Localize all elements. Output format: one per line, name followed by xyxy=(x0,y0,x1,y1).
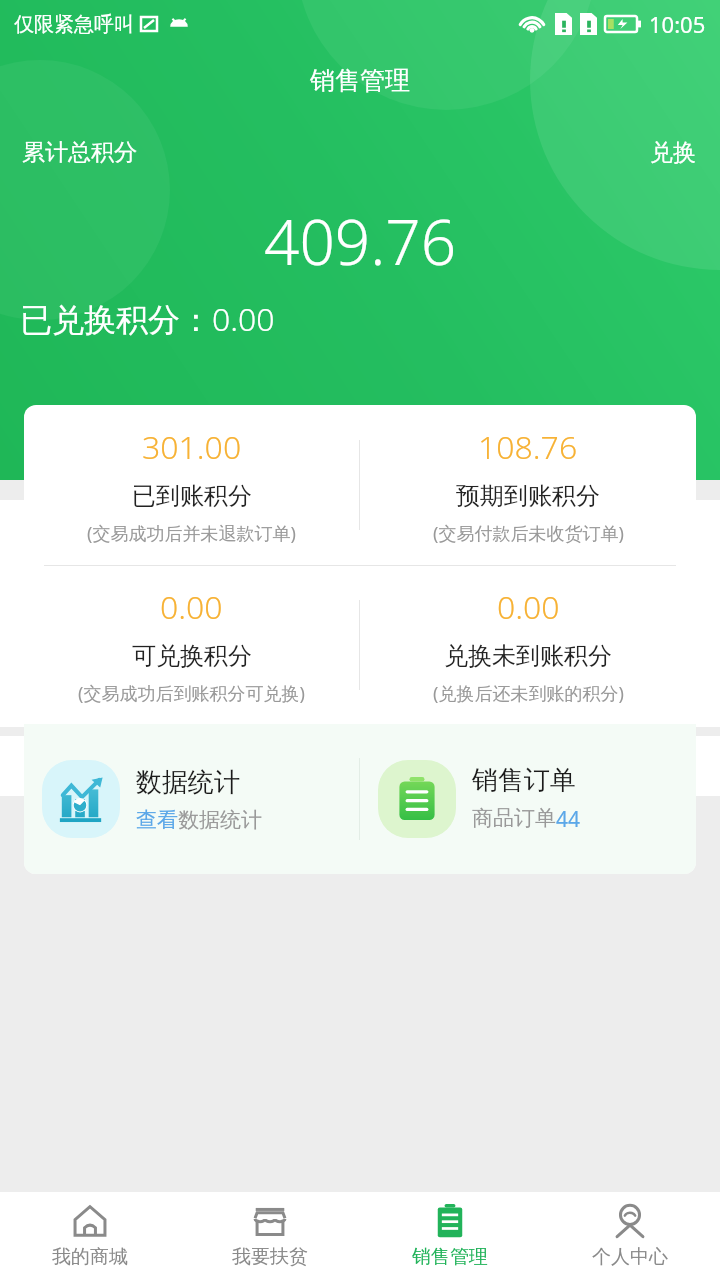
staticText: 409.76 xyxy=(264,199,457,283)
button[interactable]: 我的团队 xyxy=(0,736,720,796)
staticText: 大使商品积分 xyxy=(465,668,615,699)
button[interactable]: 销售管理 xyxy=(360,1192,540,1280)
button[interactable]: 301.00 xyxy=(24,405,359,565)
button[interactable]: 销售订单 xyxy=(360,724,696,874)
staticText: (交易成功后并未退款订单) xyxy=(87,521,296,546)
staticText: 301.00 xyxy=(142,425,242,469)
staticText: 我的商城 xyxy=(52,1245,128,1269)
button[interactable]: 我要扶贫 xyxy=(180,1192,360,1280)
button[interactable]: 我的积分 xyxy=(0,500,720,576)
button[interactable]: 0.00 xyxy=(360,566,696,724)
button[interactable]: 个人中心 xyxy=(540,1192,720,1280)
staticText: 数据统计 xyxy=(178,807,262,833)
button[interactable]: 我的商城 xyxy=(0,1192,180,1280)
staticText: 销售管理 xyxy=(412,1245,488,1269)
staticText: 44 xyxy=(556,805,581,834)
staticText: 兑换未到账积分 xyxy=(444,641,612,671)
staticText: 22.00 xyxy=(497,606,583,652)
staticText: 销售订单 xyxy=(472,764,576,797)
button[interactable]: 0.00 xyxy=(24,566,359,724)
staticText: 仅限紧急呼叫 xyxy=(14,12,134,37)
button[interactable]: 数据统计 xyxy=(24,724,359,874)
staticText: 123.76 xyxy=(127,606,233,652)
staticText: 可兑换积分 xyxy=(132,641,252,671)
button[interactable]: 22.00 xyxy=(360,577,720,727)
staticText: (交易付款后未收货订单) xyxy=(433,521,624,546)
staticText: 已到账积分 xyxy=(132,481,252,511)
staticText: 商品销售积分 xyxy=(105,668,255,699)
staticText: 我要扶贫 xyxy=(232,1245,308,1269)
staticText: 数据统计 xyxy=(136,766,240,799)
staticText: 查看 xyxy=(136,807,178,833)
staticText: (交易成功后到账积分可兑换) xyxy=(78,681,305,706)
button[interactable]: 兑换 xyxy=(648,134,698,171)
staticText: 个人中心 xyxy=(592,1245,668,1269)
staticText: 已兑换积分：0.00 xyxy=(20,297,275,341)
button[interactable]: 108.76 xyxy=(360,405,696,565)
staticText: 0.00 xyxy=(160,585,223,629)
staticText: (兑换后还未到账的积分) xyxy=(433,681,624,706)
staticText: 预期到账积分 xyxy=(456,481,600,511)
button[interactable]: 123.76 xyxy=(0,577,359,727)
staticText: 108.76 xyxy=(478,425,578,469)
staticText: 兑换 xyxy=(650,138,696,167)
staticText: 0.00 xyxy=(497,585,560,629)
staticText: 我的积分 xyxy=(90,521,198,555)
staticText: 销售管理 xyxy=(310,65,410,96)
staticText: 我的团队 xyxy=(88,752,196,786)
staticText: 10:05 xyxy=(649,9,706,39)
staticText: 累计总积分 xyxy=(22,138,137,167)
staticText: 商品订单 xyxy=(472,805,556,831)
